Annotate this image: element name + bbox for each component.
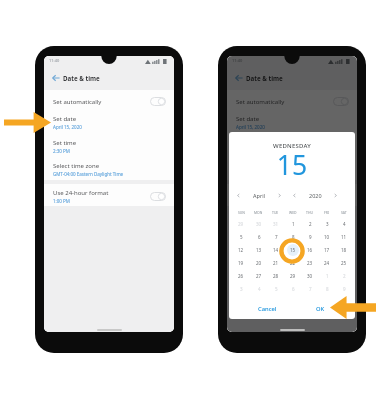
staticText: April 15, 2020 xyxy=(53,124,82,130)
button[interactable]: Use 24-hour format xyxy=(227,185,357,207)
staticText: Use 24-hour format xyxy=(236,189,292,197)
staticText: Set automatically xyxy=(53,98,102,106)
button[interactable]: Cancel xyxy=(253,299,282,319)
button[interactable]: 3 xyxy=(235,283,247,295)
button[interactable]: 12 xyxy=(235,244,247,256)
staticText: 10 xyxy=(324,234,330,240)
button[interactable]: 8 xyxy=(321,283,333,295)
staticText: 30 xyxy=(256,221,262,227)
button[interactable]: 14 xyxy=(270,244,282,256)
staticText: Select time zone xyxy=(53,162,100,170)
staticText: 25 xyxy=(341,260,347,266)
staticText: OK xyxy=(316,305,325,313)
staticText: 1 xyxy=(292,221,295,227)
staticText: 2 xyxy=(343,273,346,279)
button[interactable]: 30 xyxy=(304,270,316,282)
button[interactable]: 26 xyxy=(235,270,247,282)
button[interactable]: 9 xyxy=(304,231,316,243)
button[interactable]: 1 xyxy=(321,270,333,282)
staticText: 13 xyxy=(256,247,262,253)
button[interactable]: 8 xyxy=(287,231,299,243)
staticText: 17 xyxy=(324,247,330,253)
staticText: 6 xyxy=(292,286,295,292)
staticText: 9 xyxy=(309,234,312,240)
button[interactable]: 4 xyxy=(253,283,265,295)
button[interactable]: 16 xyxy=(304,244,316,256)
staticText: 29 xyxy=(238,221,244,227)
button[interactable]: 2 xyxy=(338,270,350,282)
button[interactable]: 28 xyxy=(270,270,282,282)
staticText: April 15, 2020 xyxy=(236,124,265,130)
button[interactable]: 24 xyxy=(321,257,333,269)
button[interactable]: 15 xyxy=(287,244,299,256)
button[interactable]: Set date xyxy=(227,111,357,134)
button[interactable]: 30 xyxy=(253,218,265,230)
button[interactable]: 22 xyxy=(287,257,299,269)
button[interactable]: 21 xyxy=(270,257,282,269)
staticText: 1 xyxy=(326,273,329,279)
button[interactable]: 27 xyxy=(253,270,265,282)
staticText: 8 xyxy=(292,234,295,240)
staticText: 30 xyxy=(307,273,313,279)
button[interactable]: 7 xyxy=(270,231,282,243)
button[interactable]: Select time zone xyxy=(227,158,357,181)
button[interactable]: 29 xyxy=(235,218,247,230)
staticText: 19 xyxy=(238,260,244,266)
button[interactable]: 29 xyxy=(287,270,299,282)
button[interactable]: OK xyxy=(311,299,330,319)
button[interactable]: Set time xyxy=(44,134,174,158)
button[interactable]: 5 xyxy=(235,231,247,243)
staticText: MON xyxy=(254,210,263,215)
button[interactable]: 2 xyxy=(304,218,316,230)
button[interactable]: 25 xyxy=(338,257,350,269)
button[interactable]: 3 xyxy=(321,218,333,230)
staticText: 15 xyxy=(290,247,296,253)
staticText: 5 xyxy=(240,234,243,240)
button[interactable]: 7 xyxy=(304,283,316,295)
button[interactable]: 10 xyxy=(321,231,333,243)
staticText: 31 xyxy=(273,221,279,227)
button[interactable]: 18 xyxy=(338,244,350,256)
button[interactable]: 23 xyxy=(304,257,316,269)
button[interactable]: 6 xyxy=(253,231,265,243)
button[interactable]: 9 xyxy=(338,283,350,295)
button[interactable]: 31 xyxy=(270,218,282,230)
button[interactable]: Select time zone xyxy=(44,158,174,181)
button[interactable]: 1 xyxy=(287,218,299,230)
staticText: 7 xyxy=(309,286,312,292)
button[interactable]: 17 xyxy=(321,244,333,256)
staticText: THU xyxy=(306,210,313,215)
button[interactable]: Set automatically xyxy=(227,92,357,111)
staticText: SAT xyxy=(341,210,347,215)
staticText: 3 xyxy=(240,286,243,292)
button[interactable]: Previous month xyxy=(235,192,242,199)
button[interactable]: Back xyxy=(231,70,246,85)
button[interactable]: 4 xyxy=(338,218,350,230)
button[interactable]: 6 xyxy=(287,283,299,295)
button[interactable]: Set time xyxy=(227,134,357,158)
button[interactable]: 13 xyxy=(253,244,265,256)
button[interactable]: 11 xyxy=(338,231,350,243)
staticText: 4 xyxy=(258,286,261,292)
staticText: 21 xyxy=(273,260,279,266)
staticText: 28 xyxy=(273,273,279,279)
button[interactable]: 20 xyxy=(253,257,265,269)
staticText: TUE xyxy=(272,210,279,215)
button[interactable]: Use 24-hour format xyxy=(44,185,174,207)
staticText: GMT-04:00 Eastern Daylight Time xyxy=(236,171,307,177)
button[interactable]: Previous year xyxy=(291,192,298,199)
button[interactable]: Next month xyxy=(276,192,283,199)
staticText: 22 xyxy=(290,260,296,266)
staticText: Set date xyxy=(53,115,77,123)
button[interactable]: 19 xyxy=(235,257,247,269)
button[interactable]: Back xyxy=(48,70,63,85)
staticText: Set date xyxy=(236,115,260,123)
button[interactable]: Set automatically xyxy=(44,92,174,111)
staticText: SUN xyxy=(238,210,245,215)
staticText: WEDNESDAY xyxy=(229,142,355,150)
button[interactable]: Set date xyxy=(44,111,174,134)
button[interactable]: Next year xyxy=(332,192,339,199)
button[interactable]: 5 xyxy=(270,283,282,295)
